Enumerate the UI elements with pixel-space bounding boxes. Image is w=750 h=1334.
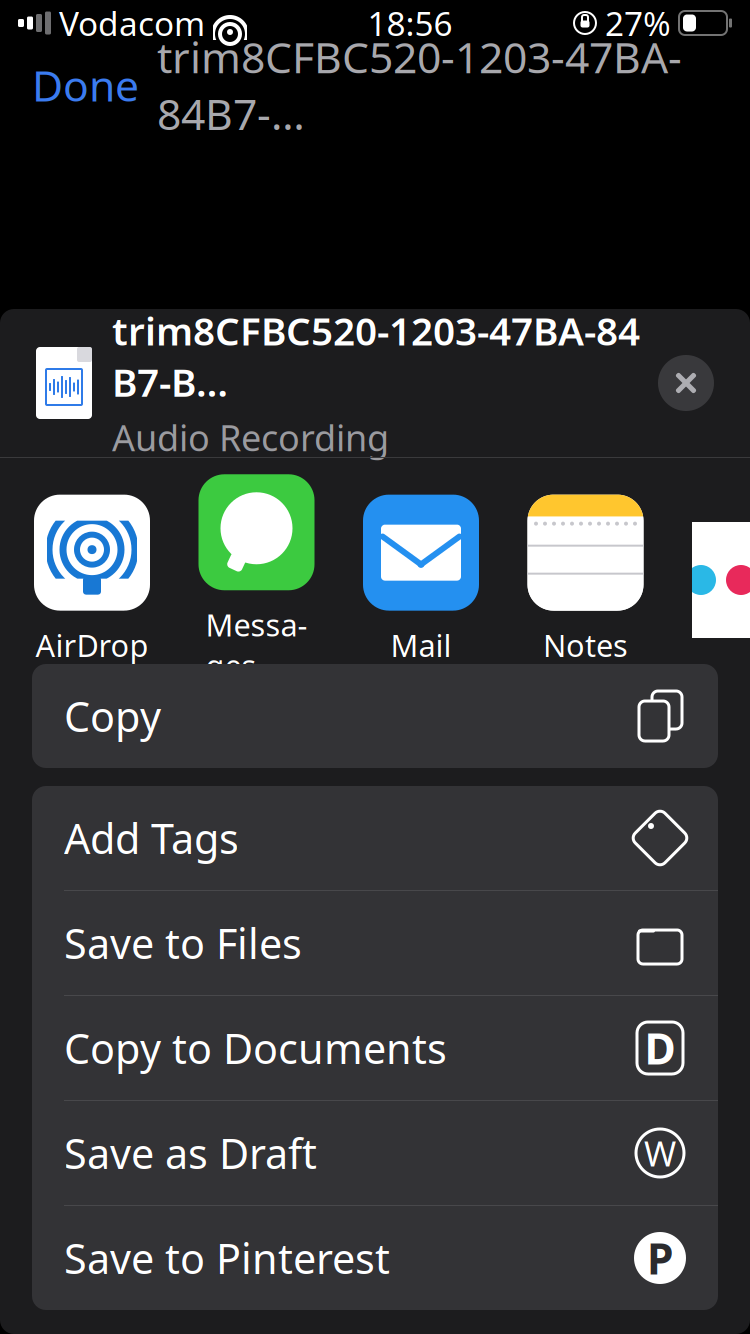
staticText: Copy to Documents bbox=[64, 1021, 447, 1075]
button[interactable]: AirDrop bbox=[34, 495, 150, 665]
staticText: 18:56 bbox=[367, 1, 452, 45]
staticText: Audio Recording bbox=[112, 413, 389, 461]
staticText: D bbox=[644, 1020, 675, 1076]
button[interactable]: Save to Pinterest bbox=[32, 1206, 718, 1310]
staticText: 27% bbox=[605, 1, 671, 45]
staticText: Save to Files bbox=[64, 916, 302, 970]
staticText: Add Tags bbox=[64, 811, 239, 865]
staticText: Messages bbox=[205, 604, 307, 686]
staticText: AirDrop bbox=[35, 625, 148, 665]
staticText: trim8CFBC520-1203-47BA-84B7-B… bbox=[112, 305, 640, 407]
staticText: Copy bbox=[64, 689, 161, 743]
staticText: Done bbox=[32, 57, 139, 113]
button[interactable]: More apps bbox=[663, 522, 750, 638]
button[interactable]: Notes bbox=[527, 495, 643, 665]
button[interactable]: Copy bbox=[32, 664, 718, 768]
staticText: Save to Pinterest bbox=[64, 1231, 390, 1285]
button[interactable]: Add Tags bbox=[32, 786, 718, 890]
button[interactable]: Save to Files bbox=[32, 891, 718, 995]
staticText: Mail bbox=[390, 625, 451, 665]
button[interactable]: Messages bbox=[198, 474, 314, 686]
button[interactable]: Save as Draft bbox=[32, 1101, 718, 1205]
staticText: W bbox=[644, 1130, 676, 1176]
staticText: Save as Draft bbox=[64, 1126, 317, 1180]
button[interactable]: Done bbox=[32, 57, 139, 113]
button[interactable]: Mail bbox=[363, 495, 479, 665]
button[interactable]: Close bbox=[658, 355, 714, 411]
button[interactable]: Copy to Documents bbox=[32, 996, 718, 1100]
staticText: Vodacom bbox=[59, 1, 205, 45]
staticText: Notes bbox=[543, 625, 628, 665]
staticText: P bbox=[647, 1230, 673, 1286]
staticText: trim8CFBC520-1203-47BA-84B7-… bbox=[157, 28, 682, 142]
